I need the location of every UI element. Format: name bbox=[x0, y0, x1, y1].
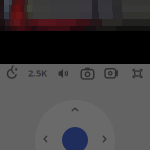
staticText: 2.5K bbox=[28, 67, 47, 79]
button[interactable]: Audio bbox=[50, 64, 75, 82]
button[interactable]: Tilt up bbox=[66, 101, 84, 119]
button[interactable]: Video mode bbox=[100, 64, 125, 82]
button[interactable]: 2.5K bbox=[25, 64, 50, 82]
button[interactable]: Recentre bbox=[62, 127, 88, 150]
button[interactable]: Pan right bbox=[95, 130, 113, 148]
button[interactable]: Aspect ratio bbox=[125, 64, 150, 82]
button[interactable]: Night mode bbox=[0, 64, 25, 82]
button[interactable]: Photo mode bbox=[75, 64, 100, 82]
button[interactable]: Pan left bbox=[37, 130, 55, 148]
